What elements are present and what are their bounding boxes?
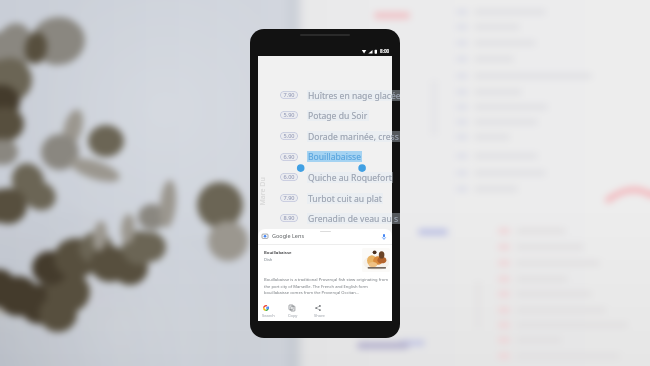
button[interactable]: 7.90: [280, 194, 298, 202]
button[interactable]: 6.00: [280, 173, 298, 181]
button[interactable]: Turbot cuit au plat: [307, 193, 383, 204]
staticText: Dish: [264, 257, 273, 262]
button[interactable]: 6.90: [280, 153, 298, 161]
staticText: 5.90: [283, 111, 295, 119]
staticText: Dorade marinée, cress: [308, 131, 399, 142]
button[interactable]: Potage du Soir: [307, 110, 369, 121]
staticText: 6.90: [283, 153, 295, 161]
staticText: 7.90: [283, 91, 295, 99]
button[interactable]: Huîtres en nage glacée: [307, 90, 400, 101]
button[interactable]: 7.90: [280, 91, 298, 99]
staticText: Bouillabaisse: [308, 151, 361, 162]
staticText: Quiche au Roquefort: [308, 172, 392, 183]
staticText: 5.00: [283, 132, 295, 140]
button[interactable]: Grenadin de veau au s: [307, 213, 400, 224]
staticText: 8:00: [380, 48, 390, 54]
button[interactable]: Google Lens: [258, 232, 392, 244]
staticText: 7.90: [283, 194, 295, 202]
staticText: Grenadin de veau au s: [308, 213, 399, 224]
staticText: 8.90: [283, 214, 295, 222]
staticText: Bouillabaisse: [264, 250, 292, 256]
button[interactable]: Search: [262, 305, 278, 318]
button[interactable]: 5.00: [280, 132, 298, 140]
staticText: 6.00: [283, 173, 295, 181]
button[interactable]: 5.90: [280, 111, 298, 119]
button[interactable]: Voice search: [378, 231, 390, 243]
button[interactable]: Dorade marinée, cress: [307, 131, 400, 142]
staticText: Mare Du: [257, 176, 267, 205]
staticText: Huîtres en nage glacée: [308, 90, 400, 101]
button[interactable]: Quiche au Roquefort: [307, 172, 393, 183]
staticText: Bouillabaisse is a traditional Provençal…: [264, 277, 388, 295]
button[interactable]: Bouillabaisse: [307, 151, 362, 162]
staticText: Share: [314, 313, 325, 318]
button[interactable]: Copy: [288, 305, 304, 318]
staticText: Potage du Soir: [308, 110, 368, 121]
staticText: Search: [262, 313, 275, 318]
button[interactable]: Share: [314, 305, 330, 318]
staticText: Turbot cuit au plat: [308, 193, 382, 204]
staticText: Copy: [288, 313, 298, 318]
staticText: Google Lens: [272, 232, 305, 239]
button[interactable]: 8.90: [280, 214, 298, 222]
